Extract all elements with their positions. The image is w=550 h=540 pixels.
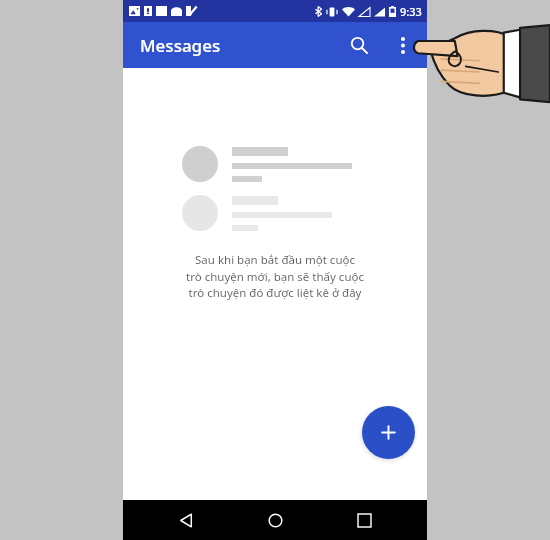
button[interactable]: Home [249, 500, 301, 540]
button[interactable]: More options [381, 23, 425, 67]
button[interactable]: Back [160, 500, 212, 540]
button[interactable]: Recent apps [338, 500, 390, 540]
staticText: Messages [140, 34, 221, 57]
button[interactable]: Start new conversation [362, 406, 415, 459]
staticText: Sau khi bạn bắt đầu một cuộc trò chuyện … [186, 252, 364, 300]
staticText: 9:33 [400, 4, 422, 19]
button[interactable]: Search [337, 23, 381, 67]
